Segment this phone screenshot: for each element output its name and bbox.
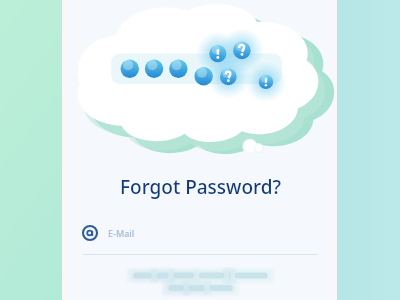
staticText: E-Mail	[108, 227, 135, 239]
button[interactable]: E-Mail	[83, 222, 318, 255]
other: E-Mail	[83, 226, 97, 240]
staticText: Forgot Password?	[120, 174, 281, 200]
